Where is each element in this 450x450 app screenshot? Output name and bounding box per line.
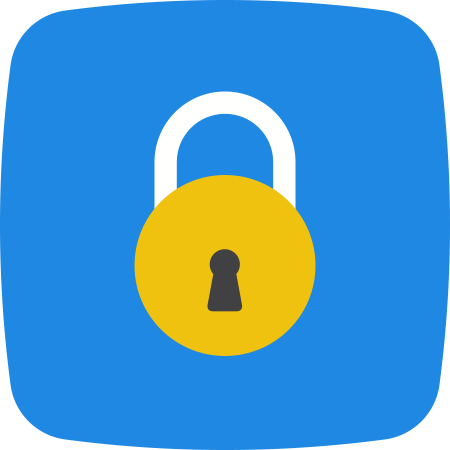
button[interactable]: Unlock	[0, 0, 450, 450]
